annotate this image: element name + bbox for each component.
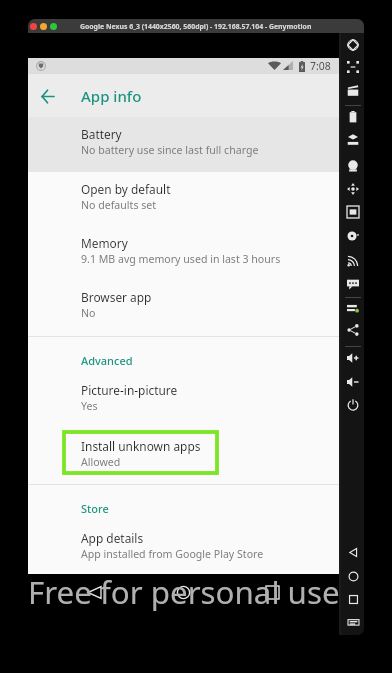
button[interactable]: Install unknown apps [28,429,339,485]
button[interactable]: Browser app [28,280,339,336]
staticText: Free for personal use [28,571,358,614]
button[interactable]: Power [344,396,362,414]
button[interactable]: Camera [344,157,362,175]
button[interactable]: Open GApps [344,300,362,318]
button[interactable]: Back [344,543,362,561]
button[interactable]: Network [344,252,362,270]
staticText: Allowed [81,455,121,469]
button[interactable]: Navigate up [34,83,60,109]
staticText: App installed from Google Play Store [81,547,264,561]
button[interactable]: Share [344,321,362,339]
button[interactable]: Keyboard [344,613,362,631]
button[interactable]: Identifiers [344,203,362,221]
staticText: 7:08 [310,59,331,73]
staticText: Battery [81,126,122,142]
button[interactable]: GPS [344,131,362,149]
button[interactable]: Volume up [344,349,362,367]
button[interactable]: Recent apps [260,580,285,605]
button[interactable]: Home [344,567,362,585]
staticText: Browser app [81,289,152,305]
button[interactable]: Close window [30,23,37,30]
staticText: Picture-in-picture [81,382,178,398]
button[interactable]: Picture-in-picture [28,373,339,429]
button[interactable]: Battery [344,108,362,126]
button[interactable]: Disk IO [344,227,362,245]
staticText: No [81,306,96,320]
button[interactable]: Accelerometer [344,180,362,198]
button[interactable]: Maximise window [50,23,57,30]
button[interactable]: Pixel perfect [344,58,362,76]
staticText: Advanced [81,353,133,368]
staticText: Memory [81,235,128,251]
button[interactable]: Back [82,580,107,605]
button[interactable]: Rotate screen [344,36,362,54]
staticText: No battery use since last full charge [81,143,259,157]
button[interactable]: Open by default [28,172,339,226]
button[interactable]: App details [28,521,339,577]
button[interactable]: Recent apps [344,590,362,608]
staticText: 9.1 MB avg memory used in last 3 hours [81,252,281,266]
staticText: Open by default [81,181,171,197]
staticText: Google Nexus 6_3 (1440x2560, 560dpi) - 1… [80,22,312,31]
button[interactable]: Home [171,580,196,605]
button[interactable]: Battery [28,117,339,172]
button[interactable]: Volume down [344,373,362,391]
staticText: Store [81,501,109,516]
button[interactable]: Memory [28,226,339,281]
button[interactable]: Minimise window [40,23,47,30]
staticText: App info [81,86,142,106]
staticText: App details [81,530,144,546]
staticText: Yes [81,399,98,413]
staticText: No defaults set [81,198,157,212]
button[interactable]: Screen record [344,82,362,100]
staticText: Install unknown apps [81,438,201,454]
button[interactable]: Phone and SMS [344,275,362,293]
